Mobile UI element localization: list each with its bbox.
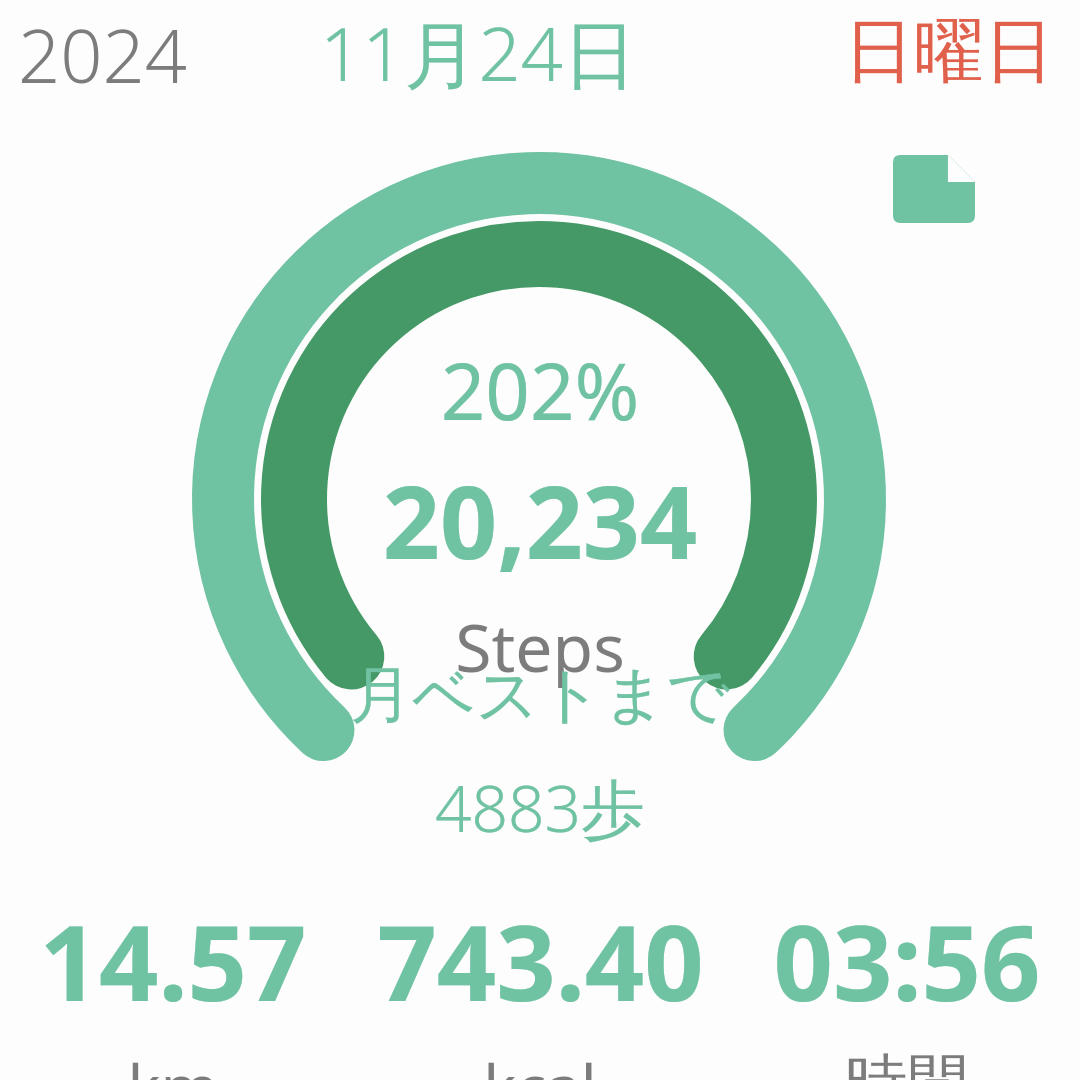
button[interactable]: 03:56 bbox=[734, 890, 1080, 1080]
staticText: 11月24日 bbox=[320, 2, 638, 100]
button[interactable]: Report bbox=[893, 155, 975, 223]
staticText: 日曜日 bbox=[844, 8, 1054, 96]
staticText: 20,234 bbox=[0, 452, 1080, 588]
staticText: 4883歩 bbox=[0, 764, 1080, 851]
button[interactable]: 14.57 bbox=[0, 890, 346, 1080]
staticText: 時間 bbox=[845, 1044, 969, 1080]
button[interactable]: 2024 bbox=[0, 0, 1080, 100]
staticText: km bbox=[127, 1044, 219, 1080]
staticText: 2024 bbox=[18, 4, 188, 100]
staticText: Steps bbox=[0, 601, 1080, 691]
staticText: 03:56 bbox=[773, 890, 1041, 1032]
staticText: 14.57 bbox=[39, 890, 307, 1032]
staticText: 743.40 bbox=[377, 890, 704, 1032]
staticText: kcal bbox=[483, 1044, 597, 1080]
button[interactable]: 743.40 bbox=[346, 890, 734, 1080]
staticText: 202% bbox=[0, 337, 1080, 443]
staticText: 月ベストまで bbox=[0, 656, 1080, 734]
